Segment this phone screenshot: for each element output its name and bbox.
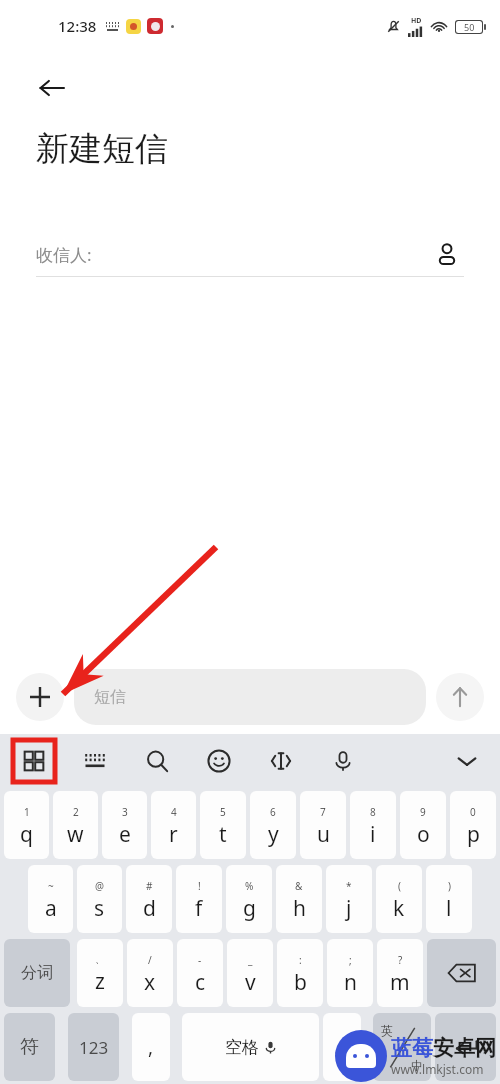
button[interactable]: & <box>276 865 322 933</box>
button[interactable]: ? <box>377 939 423 1007</box>
staticText: : <box>299 953 302 967</box>
staticText: s <box>94 894 105 923</box>
staticText: 5 <box>220 805 226 819</box>
staticText: & <box>295 879 303 893</box>
button[interactable]: / <box>127 939 173 1007</box>
button[interactable]: 符 <box>4 1013 55 1081</box>
staticText: 123 <box>79 1036 109 1059</box>
button[interactable]: ; <box>327 939 373 1007</box>
staticText: 分词 <box>21 963 53 983</box>
button[interactable]: 分词 <box>4 939 70 1007</box>
button[interactable]: Delete <box>427 939 496 1007</box>
staticText: m <box>390 968 410 997</box>
staticText: % <box>245 879 254 893</box>
button[interactable]: _ <box>227 939 273 1007</box>
staticText: 英 <box>381 1023 393 1038</box>
button[interactable]: % <box>226 865 272 933</box>
button[interactable]: Emoji <box>198 740 240 782</box>
staticText: y <box>268 820 279 849</box>
button[interactable]: 6 <box>250 791 296 859</box>
staticText: ~ <box>48 879 54 893</box>
staticText: f <box>195 894 203 923</box>
button[interactable]: Back <box>26 62 78 114</box>
button[interactable]: : <box>277 939 323 1007</box>
staticText: n <box>344 968 357 997</box>
button[interactable]: 4 <box>151 791 196 859</box>
staticText: c <box>195 968 206 997</box>
staticText: 蓝莓 <box>391 1035 433 1061</box>
staticText: 50 <box>464 21 475 33</box>
staticText: z <box>95 967 105 996</box>
staticText: d <box>143 894 156 923</box>
button[interactable]: Send <box>436 673 484 721</box>
staticText: ; <box>349 953 352 967</box>
button[interactable]: , <box>132 1013 170 1081</box>
staticText: o <box>417 820 430 849</box>
staticText: e <box>119 820 131 849</box>
staticText: r <box>169 820 178 849</box>
staticText: u <box>317 820 330 849</box>
button[interactable]: 1 <box>4 791 49 859</box>
button[interactable]: - <box>177 939 223 1007</box>
button[interactable]: Voice input <box>322 740 364 782</box>
staticText: # <box>146 879 153 893</box>
staticText: ! <box>198 879 201 893</box>
staticText: 8 <box>370 805 376 819</box>
staticText: p <box>467 820 480 849</box>
staticText: g <box>243 894 256 923</box>
button[interactable]: Choose contact <box>430 237 464 271</box>
button[interactable]: 、 <box>77 939 123 1007</box>
button[interactable]: 7 <box>300 791 346 859</box>
button[interactable]: 5 <box>200 791 246 859</box>
staticText: - <box>198 953 202 967</box>
button[interactable]: 9 <box>400 791 446 859</box>
button[interactable]: Keyboard layouts <box>12 739 56 783</box>
staticText: w <box>67 820 84 849</box>
button[interactable]: * <box>326 865 372 933</box>
button[interactable]: 123 <box>68 1013 119 1081</box>
staticText: @ <box>95 879 104 893</box>
button[interactable]: 。 <box>323 1013 361 1081</box>
staticText: t <box>219 820 227 849</box>
button[interactable]: Switch keyboard <box>74 740 116 782</box>
button[interactable]: Text edit <box>260 740 302 782</box>
button[interactable]: 2 <box>53 791 98 859</box>
button[interactable]: Add attachment <box>16 673 64 721</box>
button[interactable]: ~ <box>28 865 73 933</box>
staticText: 12:38 <box>58 16 97 36</box>
staticText: j <box>346 894 352 923</box>
staticText: ( <box>398 879 401 893</box>
staticText: 7 <box>320 805 326 819</box>
button[interactable]: @ <box>77 865 122 933</box>
staticText: HD <box>411 16 422 26</box>
staticText: 、 <box>95 953 105 966</box>
staticText: _ <box>248 953 253 967</box>
button[interactable]: 3 <box>102 791 147 859</box>
staticText: 。 <box>334 1037 351 1058</box>
button[interactable]: 空格 <box>182 1013 319 1081</box>
staticText: 9 <box>420 805 426 819</box>
button[interactable]: Hide keyboard <box>444 738 490 784</box>
button[interactable]: ) <box>426 865 472 933</box>
button[interactable]: 短信 <box>74 669 426 725</box>
button[interactable]: 收信人: <box>36 232 464 276</box>
staticText: b <box>294 968 307 997</box>
button[interactable]: # <box>126 865 172 933</box>
button[interactable]: Search <box>136 740 178 782</box>
button[interactable]: ! <box>176 865 222 933</box>
staticText: 3 <box>122 805 128 819</box>
button[interactable]: Language toggle <box>373 1013 431 1081</box>
button[interactable]: Enter <box>435 1013 496 1081</box>
button[interactable]: 8 <box>350 791 396 859</box>
staticText: x <box>144 968 156 997</box>
button[interactable]: 0 <box>450 791 496 859</box>
staticText: h <box>293 894 306 923</box>
staticText: 短信 <box>94 687 126 707</box>
button[interactable]: ( <box>376 865 422 933</box>
staticText: ) <box>448 879 451 893</box>
staticText: 中 <box>411 1058 423 1073</box>
staticText: www.lmkjst.com <box>391 1061 484 1077</box>
staticText: 收信人: <box>36 243 92 266</box>
staticText: ? <box>398 953 403 967</box>
staticText: / <box>148 953 152 967</box>
